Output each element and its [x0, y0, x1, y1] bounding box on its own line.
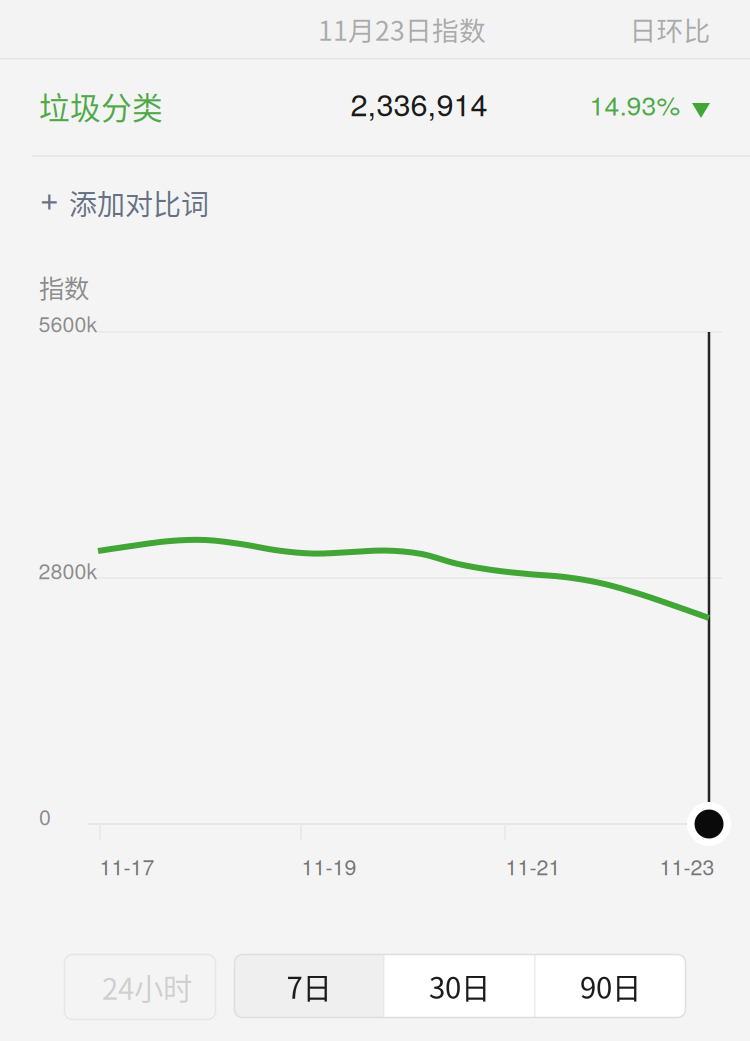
button[interactable]: 90日: [535, 954, 685, 1017]
button[interactable]: 24小时: [64, 954, 215, 1019]
staticText: 添加对比词: [69, 182, 209, 223]
staticText: 11-17: [99, 851, 154, 881]
staticText: 日环比: [629, 10, 710, 48]
staticText: 垃圾分类: [39, 84, 163, 128]
staticText: 5600k: [38, 308, 97, 338]
staticText: 11-19: [301, 851, 356, 881]
staticText: 0: [39, 801, 51, 831]
staticText: 11-23: [659, 851, 714, 881]
button[interactable]: +: [21, 161, 229, 231]
staticText: +: [39, 172, 58, 220]
staticText: 11月23日指数: [318, 10, 486, 48]
button[interactable]: 7日: [234, 954, 383, 1017]
staticText: 指数: [39, 269, 89, 305]
staticText: 90日: [580, 965, 641, 1007]
staticText: 7日: [286, 965, 331, 1007]
staticText: 2,336,914: [350, 81, 487, 125]
staticText: 30日: [429, 965, 490, 1007]
staticText: 24小时: [102, 966, 192, 1008]
staticText: 2800k: [38, 555, 97, 585]
staticText: 14.93%: [589, 85, 680, 123]
staticText: 11-21: [505, 851, 560, 881]
button[interactable]: 30日: [384, 954, 534, 1017]
